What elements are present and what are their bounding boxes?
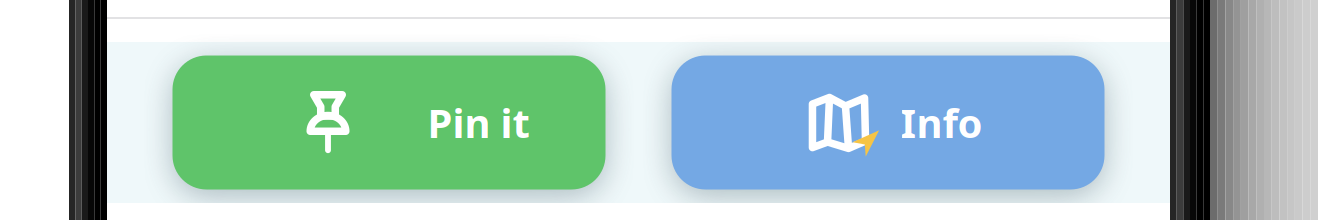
staticText: Info	[900, 96, 982, 149]
button[interactable]: Info	[671, 55, 1104, 189]
staticText: Pin it	[427, 96, 529, 149]
button[interactable]: Pin it	[172, 55, 605, 189]
